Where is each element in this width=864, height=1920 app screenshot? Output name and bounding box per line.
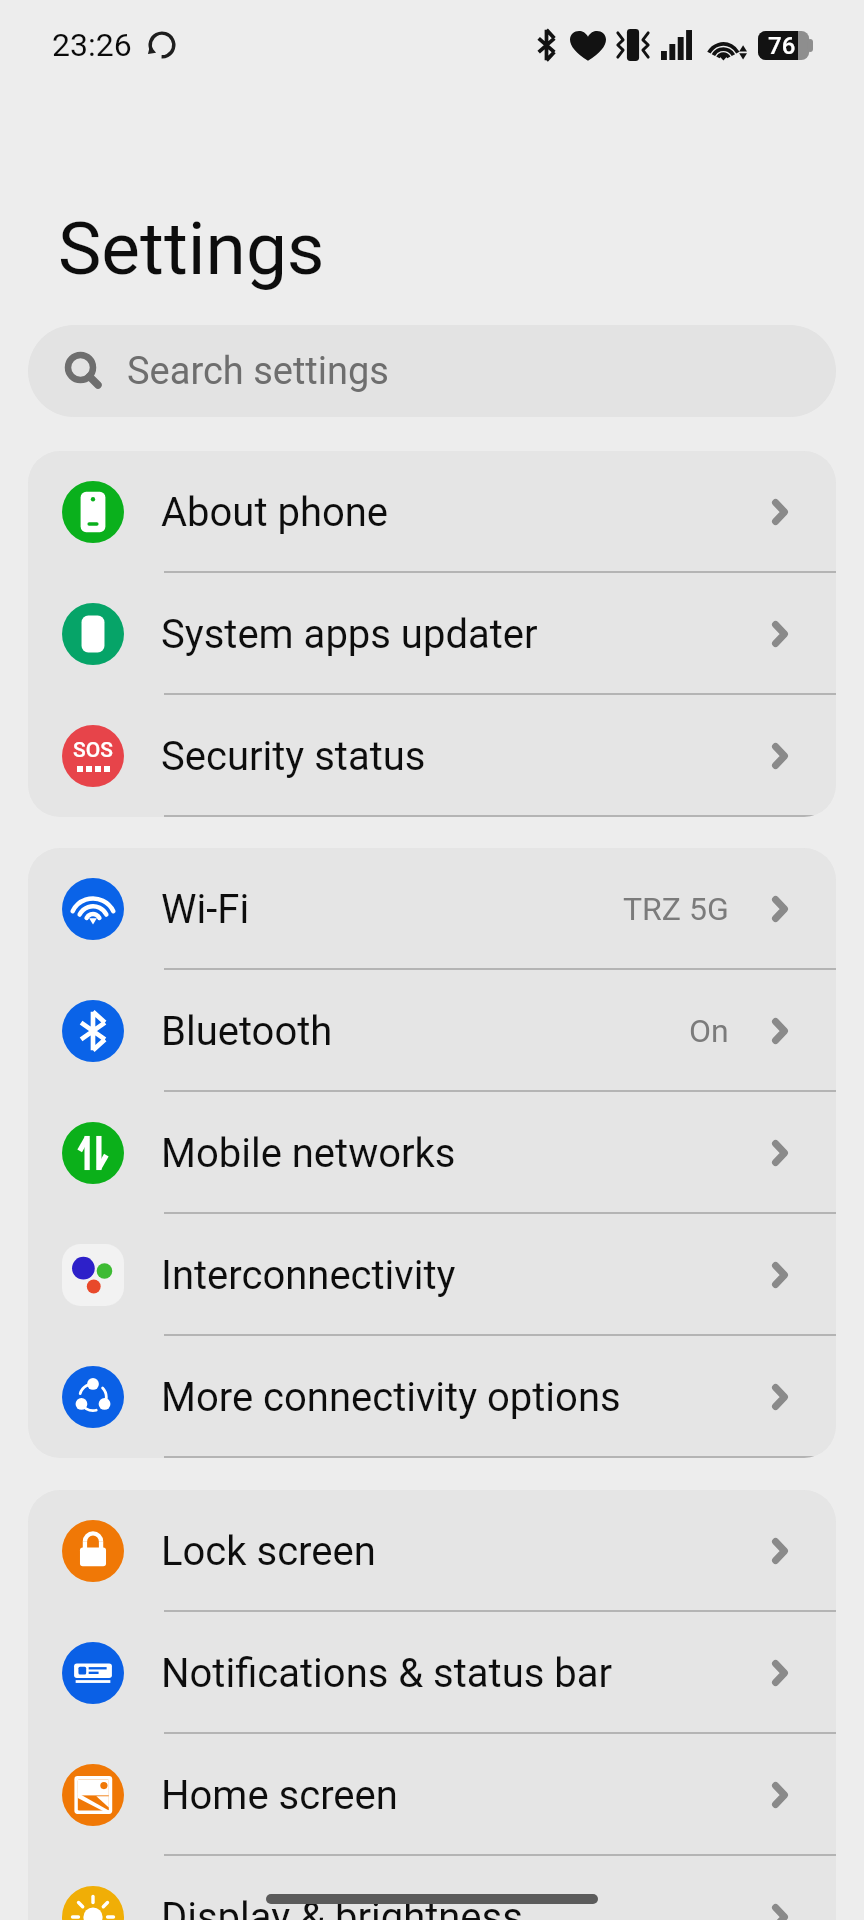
staticText: Settings [58, 206, 325, 292]
button[interactable]: About phone [28, 451, 836, 573]
staticText: Interconnectivity [161, 1252, 456, 1299]
staticText: Bluetooth [161, 1008, 333, 1055]
staticText: Home screen [161, 1772, 398, 1819]
staticText: About phone [161, 489, 389, 536]
button[interactable]: More connectivity options [28, 1336, 836, 1458]
staticText: SOS [73, 738, 113, 763]
button[interactable]: Mobile networks [28, 1092, 836, 1214]
button[interactable]: Wi-Fi [28, 848, 836, 970]
button[interactable]: Notifications & status bar [28, 1612, 836, 1734]
button[interactable]: Lock screen [28, 1490, 836, 1612]
button[interactable]: Search settings [28, 325, 836, 417]
staticText: TRZ 5G [623, 890, 729, 928]
button[interactable]: Security status [28, 695, 836, 817]
staticText: 76 [768, 32, 796, 60]
staticText: Lock screen [161, 1528, 376, 1575]
staticText: More connectivity options [161, 1374, 621, 1421]
button[interactable]: System apps updater [28, 573, 836, 695]
staticText: On [689, 1012, 729, 1050]
staticText: Display & brightness [161, 1894, 523, 1920]
staticText: System apps updater [161, 611, 538, 658]
button[interactable]: Display & brightness [28, 1856, 836, 1920]
button[interactable]: Interconnectivity [28, 1214, 836, 1336]
staticText: Search settings [127, 349, 389, 394]
staticText: 23:26 [52, 26, 132, 64]
staticText: Wi-Fi [161, 886, 250, 933]
button[interactable]: Bluetooth [28, 970, 836, 1092]
staticText: Security status [161, 733, 426, 780]
staticText: Notifications & status bar [161, 1650, 613, 1697]
button[interactable]: Home screen [28, 1734, 836, 1856]
staticText: Mobile networks [161, 1130, 456, 1177]
